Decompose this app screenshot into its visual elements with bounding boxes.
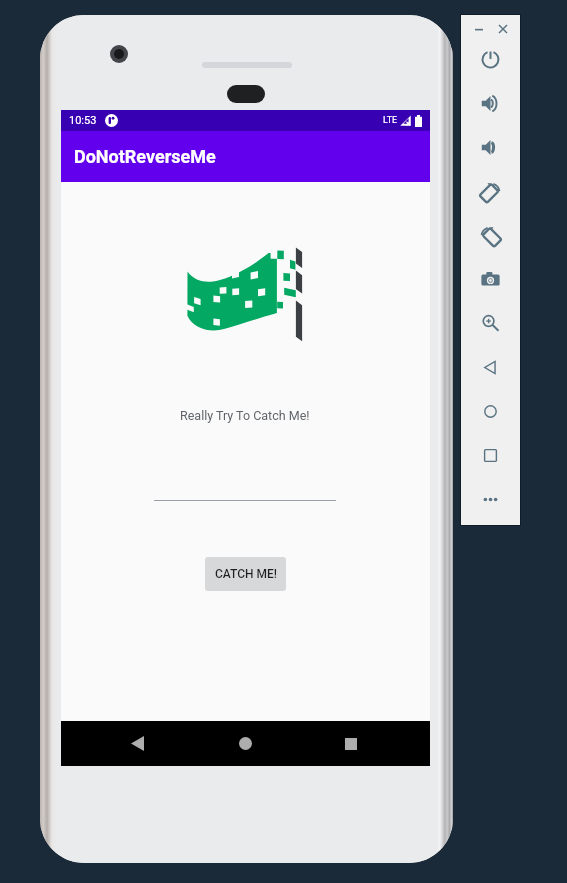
button[interactable]: Volume down <box>461 125 520 169</box>
button[interactable]: Minimize <box>472 22 486 36</box>
button[interactable]: Zoom <box>461 301 520 345</box>
button[interactable]: CATCH ME! <box>205 557 286 591</box>
button[interactable]: Power <box>461 37 520 81</box>
button[interactable]: Rotate right <box>461 213 520 257</box>
button[interactable]: Screenshot <box>461 257 520 301</box>
staticText: 10:53 <box>69 114 97 127</box>
staticText: LTE <box>383 115 398 126</box>
button[interactable]: Rotate left <box>461 169 520 213</box>
staticText: CATCH ME! <box>215 567 277 581</box>
button[interactable]: More <box>461 477 520 521</box>
button[interactable]: Close <box>496 22 510 36</box>
button[interactable]: Home <box>461 389 520 433</box>
staticText: Really Try To Catch Me! <box>180 408 310 423</box>
button[interactable]: Home <box>223 721 267 766</box>
button[interactable]: Overview <box>461 433 520 477</box>
button[interactable]: Recents <box>329 721 373 766</box>
button[interactable]: Volume up <box>461 81 520 125</box>
staticText: DoNotReverseMe <box>74 146 216 167</box>
button[interactable]: Back <box>115 721 159 766</box>
button[interactable]: Back <box>461 345 520 389</box>
